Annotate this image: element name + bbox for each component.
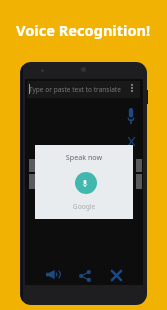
button[interactable]: Close bbox=[111, 270, 122, 281]
button[interactable]: Type or paste text to translate bbox=[27, 81, 140, 98]
staticText: Type or paste text to translate bbox=[29, 85, 121, 94]
button[interactable]: Speak bbox=[46, 270, 60, 279]
button[interactable]: Microphone bbox=[75, 172, 97, 194]
button[interactable]: Share bbox=[79, 270, 91, 282]
staticText: Google bbox=[35, 202, 133, 211]
button[interactable]: Clear text bbox=[128, 137, 135, 146]
staticText: Voice Recognition! bbox=[16, 20, 151, 40]
button[interactable]: Voice input bbox=[128, 108, 134, 124]
staticText: Speak now bbox=[35, 152, 133, 162]
